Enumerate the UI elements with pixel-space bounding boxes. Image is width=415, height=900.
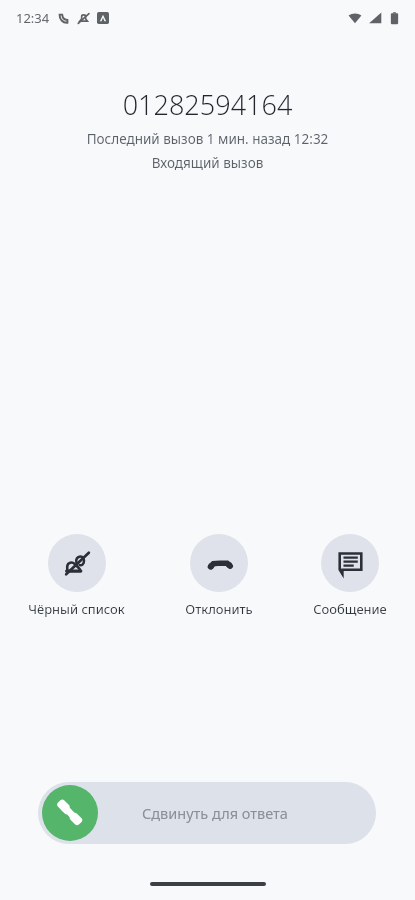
- staticText: Сообщение: [313, 600, 387, 618]
- staticText: Чёрный список: [28, 600, 125, 618]
- staticText: 12:34: [16, 9, 50, 27]
- button[interactable]: Сообщение: [311, 532, 389, 620]
- staticText: Входящий вызов: [0, 154, 415, 172]
- button[interactable]: Сдвинуть для ответа: [38, 782, 376, 844]
- staticText: Сдвинуть для ответа: [142, 803, 288, 823]
- staticText: Отклонить: [185, 600, 253, 618]
- button[interactable]: Чёрный список: [26, 532, 127, 620]
- staticText: Последний вызов 1 мин. назад 12:32: [0, 130, 415, 148]
- button[interactable]: Отклонить: [183, 532, 255, 620]
- staticText: 01282594164: [0, 86, 415, 123]
